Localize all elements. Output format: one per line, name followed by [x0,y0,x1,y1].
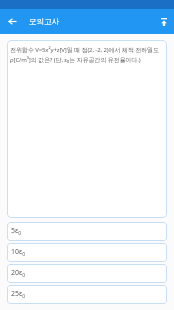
button[interactable]: Upload [153,9,174,34]
button[interactable]: 5ε0 [7,222,167,241]
button[interactable]: 20ε0 [7,264,167,283]
staticText: 전위함수 V=5x²y+z[V]일 때 점(2, -2, 2)에서 체적 전하밀… [10,45,165,65]
staticText: 25ε0 [11,289,26,300]
button[interactable]: Back [0,9,25,34]
button[interactable]: 25ε0 [7,285,167,304]
button[interactable]: 10ε0 [7,243,167,262]
staticText: 모의고사 [29,17,60,27]
staticText: 20ε0 [11,268,26,279]
staticText: 5ε0 [11,226,22,237]
staticText: 10ε0 [11,247,26,258]
